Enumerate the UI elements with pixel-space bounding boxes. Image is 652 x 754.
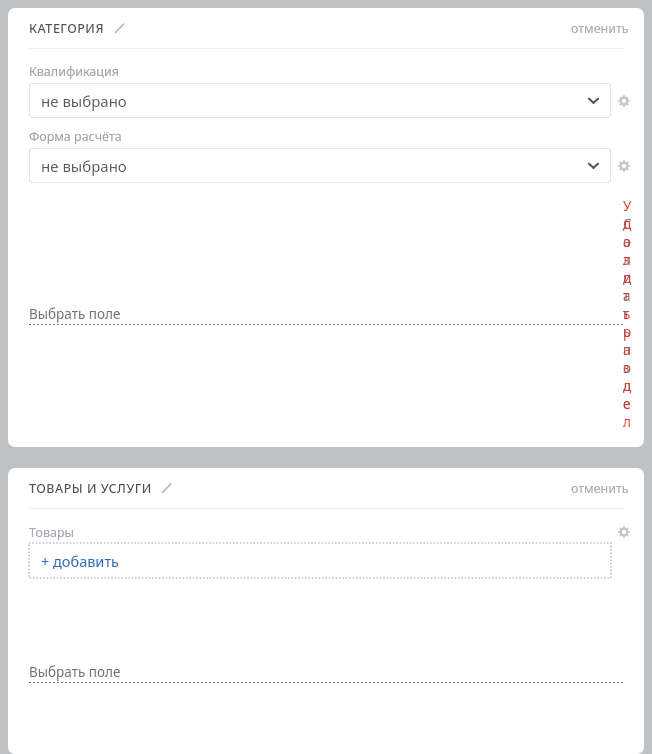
button[interactable]: Выбрать поле: [29, 305, 623, 326]
staticText: Форма расчёта: [29, 128, 122, 145]
staticText: Квалификация: [29, 63, 119, 80]
staticText: не выбрано: [41, 91, 127, 111]
button[interactable]: Настройки поля: [615, 92, 633, 110]
button[interactable]: КАТЕГОРИЯ: [8, 8, 644, 48]
button[interactable]: ТОВАРЫ И УСЛУГИ: [8, 468, 644, 508]
button[interactable]: Настройки поля: [615, 157, 633, 175]
button[interactable]: Выбрать поле: [29, 663, 623, 684]
staticText: Выбрать поле: [29, 663, 121, 681]
staticText: ТОВАРЫ И УСЛУГИ: [29, 480, 152, 497]
staticText: отменить: [571, 480, 629, 497]
button[interactable]: не выбрано: [29, 83, 611, 118]
staticText: Товары: [29, 524, 74, 541]
staticText: + добавить: [41, 551, 120, 571]
staticText: Выбрать поле: [29, 305, 121, 323]
button[interactable]: Настройки поля: [615, 523, 633, 541]
button[interactable]: + добавить: [29, 543, 611, 578]
button[interactable]: не выбрано: [29, 148, 611, 183]
staticText: КАТЕГОРИЯ: [29, 20, 105, 37]
staticText: отменить: [571, 20, 629, 37]
staticText: не выбрано: [41, 156, 127, 176]
